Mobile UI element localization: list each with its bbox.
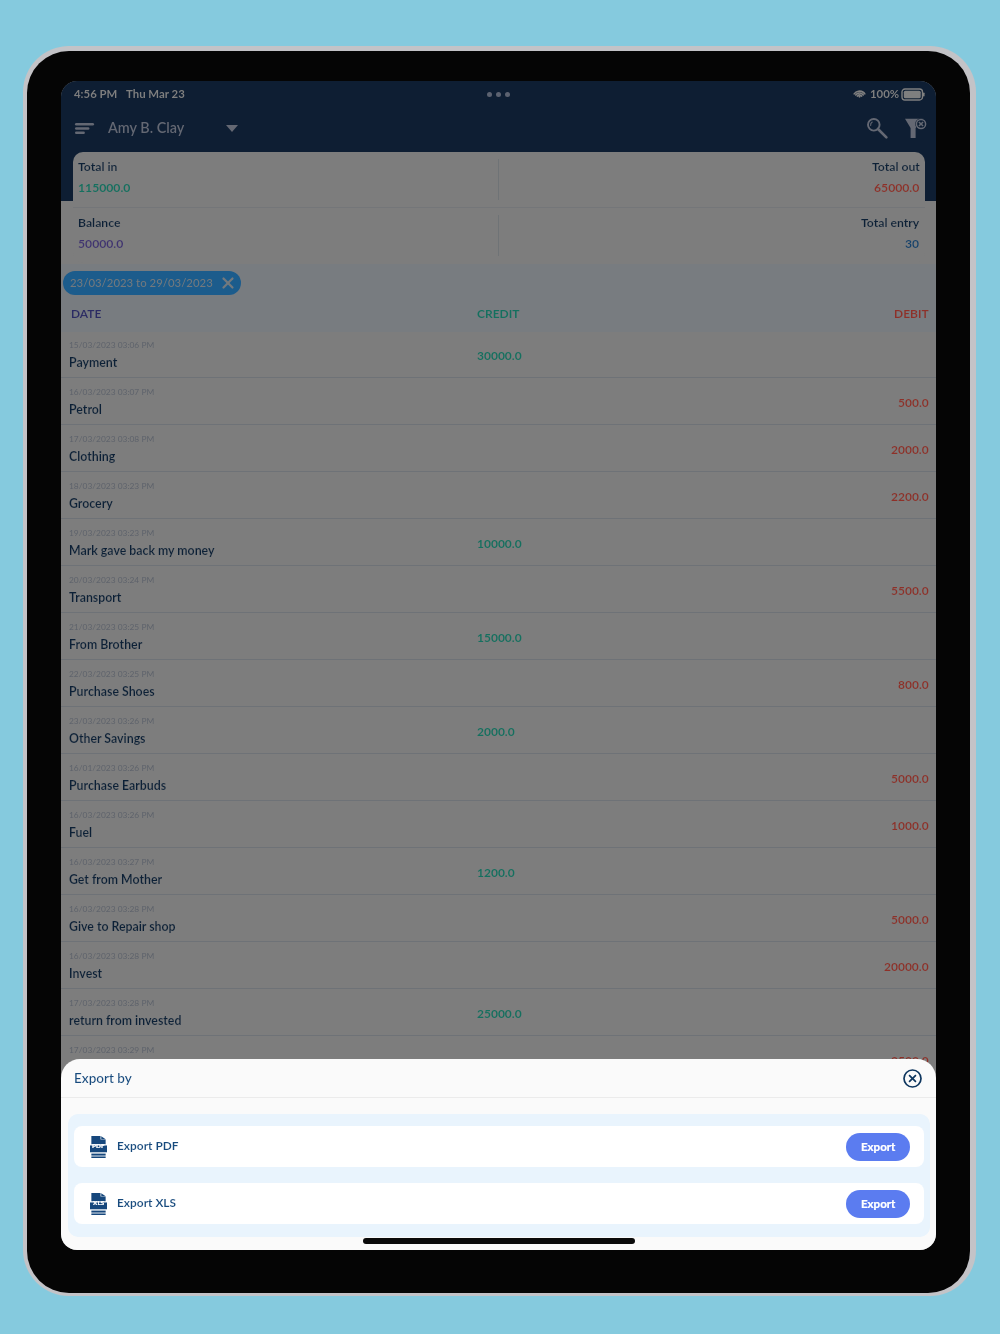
button[interactable]: 21/03/2023 03:25 PM bbox=[61, 613, 936, 660]
staticText: DEBIT bbox=[894, 306, 929, 320]
button[interactable]: Search bbox=[859, 110, 895, 146]
staticText: 5500.0 bbox=[891, 583, 929, 597]
button[interactable]: 17/03/2023 03:29 PM bbox=[61, 1036, 936, 1083]
staticText: 5000.0 bbox=[891, 912, 929, 926]
staticText: 16/03/2023 03:27 PM bbox=[69, 857, 155, 867]
staticText: Export bbox=[861, 1197, 896, 1211]
staticText: 21/03/2023 03:25 PM bbox=[69, 622, 155, 632]
staticText: Fuel bbox=[69, 825, 93, 840]
staticText: 2000.0 bbox=[891, 442, 929, 456]
staticText: 65000.0 bbox=[874, 180, 920, 195]
staticText: 17/03/2023 03:28 PM bbox=[69, 998, 155, 1008]
staticText: Export bbox=[861, 1140, 896, 1154]
button[interactable]: 17/03/2023 03:28 PM bbox=[61, 989, 936, 1036]
staticText: 15000.0 bbox=[477, 630, 522, 644]
staticText: Export PDF bbox=[117, 1138, 179, 1152]
staticText: Purchase Shoes bbox=[69, 684, 155, 699]
staticText: Other Savings bbox=[69, 731, 146, 746]
button[interactable]: Close bbox=[898, 1064, 926, 1092]
staticText: 25000.0 bbox=[477, 1006, 522, 1020]
staticText: Transport bbox=[69, 590, 122, 605]
staticText: 16/03/2023 03:07 PM bbox=[69, 387, 155, 397]
staticText: Invest bbox=[69, 966, 103, 981]
staticText: 18/03/2023 03:23 PM bbox=[69, 481, 155, 491]
staticText: 19/03/2023 03:23 PM bbox=[69, 528, 155, 538]
staticText: Purchase Earbuds bbox=[69, 778, 167, 793]
button[interactable]: Export bbox=[846, 1190, 910, 1218]
staticText: Mark gave back my money bbox=[69, 543, 215, 558]
staticText: From Brother bbox=[69, 637, 143, 652]
staticText: 30 bbox=[905, 236, 920, 251]
staticText: 4:56 PM bbox=[74, 87, 118, 101]
staticText: Thu Mar 23 bbox=[126, 87, 185, 101]
button[interactable]: 22/03/2023 03:25 PM bbox=[61, 660, 936, 707]
staticText: 1000.0 bbox=[891, 818, 929, 832]
staticText: 20/03/2023 03:24 PM bbox=[69, 575, 155, 585]
button[interactable]: 16/01/2023 03:26 PM bbox=[61, 754, 936, 801]
staticText: 50000.0 bbox=[78, 236, 124, 251]
staticText: Grocery bbox=[69, 496, 113, 511]
staticText: 1200.0 bbox=[477, 865, 515, 879]
staticText: Total out bbox=[872, 159, 920, 174]
staticText: Export by bbox=[74, 1070, 132, 1086]
staticText: 22/03/2023 03:25 PM bbox=[69, 669, 155, 679]
staticText: 500.0 bbox=[898, 395, 929, 409]
button[interactable]: 16/03/2023 03:07 PM bbox=[61, 378, 936, 425]
staticText: 20000.0 bbox=[884, 959, 929, 973]
staticText: Payment bbox=[69, 355, 118, 370]
staticText: 17/03/2023 03:29 PM bbox=[69, 1045, 155, 1055]
button[interactable]: 16/03/2023 03:28 PM bbox=[61, 942, 936, 989]
staticText: 16/03/2023 03:28 PM bbox=[69, 951, 155, 961]
staticText: CREDIT bbox=[477, 306, 520, 320]
button[interactable]: XLS bbox=[74, 1183, 924, 1224]
staticText: DATE bbox=[71, 306, 102, 320]
button[interactable]: 23/03/2023 03:26 PM bbox=[61, 707, 936, 754]
staticText: Balance bbox=[78, 215, 121, 230]
staticText: 23/03/2023 03:26 PM bbox=[69, 716, 155, 726]
button[interactable]: 18/03/2023 03:23 PM bbox=[61, 472, 936, 519]
button[interactable]: 16/03/2023 03:28 PM bbox=[61, 895, 936, 942]
staticText: 2000.0 bbox=[477, 724, 515, 738]
staticText: 16/03/2023 03:26 PM bbox=[69, 810, 155, 820]
staticText: 15/03/2023 03:06 PM bbox=[69, 340, 155, 350]
staticText: 100% bbox=[870, 87, 900, 101]
staticText: Get from Mother bbox=[69, 872, 163, 887]
staticText: 2500.0 bbox=[891, 1053, 929, 1067]
staticText: Export XLS bbox=[117, 1195, 177, 1209]
button[interactable]: PDF bbox=[74, 1126, 924, 1167]
staticText: 16/01/2023 03:26 PM bbox=[69, 763, 155, 773]
button[interactable]: 16/03/2023 03:27 PM bbox=[61, 848, 936, 895]
button[interactable]: 17/03/2023 03:08 PM bbox=[61, 425, 936, 472]
button[interactable]: 19/03/2023 03:23 PM bbox=[61, 519, 936, 566]
staticText: 10000.0 bbox=[477, 536, 522, 550]
staticText: 115000.0 bbox=[78, 180, 131, 195]
staticText: 5000.0 bbox=[891, 771, 929, 785]
button[interactable]: Select account bbox=[219, 115, 245, 141]
staticText: Clothing bbox=[69, 449, 116, 464]
staticText: 17/03/2023 03:08 PM bbox=[69, 434, 155, 444]
button[interactable]: 16/03/2023 03:26 PM bbox=[61, 801, 936, 848]
staticText: Give to Brother bbox=[69, 1060, 154, 1075]
staticText: Total in bbox=[78, 159, 118, 174]
button[interactable]: Export bbox=[846, 1133, 910, 1161]
staticText: 16/03/2023 03:28 PM bbox=[69, 904, 155, 914]
staticText: 23/03/2023 to 29/03/2023 bbox=[70, 276, 213, 290]
button[interactable]: 20/03/2023 03:24 PM bbox=[61, 566, 936, 613]
staticText: XLS bbox=[93, 1199, 105, 1207]
button[interactable]: Clear filter bbox=[897, 110, 933, 146]
staticText: 800.0 bbox=[898, 677, 929, 691]
button[interactable]: Menu bbox=[69, 113, 99, 143]
button[interactable]: 23/03/2023 to 29/03/2023 bbox=[63, 271, 241, 295]
staticText: 30000.0 bbox=[477, 348, 522, 362]
staticText: Give to Repair shop bbox=[69, 919, 176, 934]
staticText: return from invested bbox=[69, 1013, 182, 1028]
staticText: Total entry bbox=[861, 215, 920, 230]
staticText: Petrol bbox=[69, 402, 102, 417]
staticText: Amy B. Clay bbox=[108, 119, 185, 136]
staticText: 2200.0 bbox=[891, 489, 929, 503]
staticText: PDF bbox=[92, 1142, 105, 1150]
button[interactable]: 15/03/2023 03:06 PM bbox=[61, 331, 936, 378]
